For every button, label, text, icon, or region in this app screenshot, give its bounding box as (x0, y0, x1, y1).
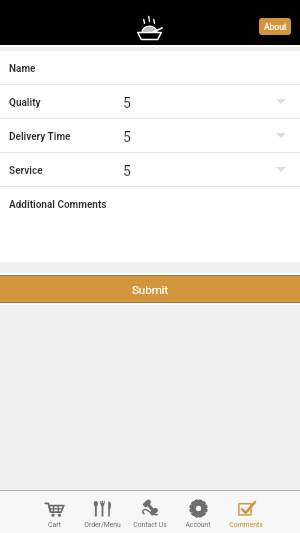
button[interactable]: About (259, 18, 291, 35)
button[interactable]: Submit (0, 275, 300, 303)
button[interactable]: Delivery Time (0, 119, 300, 153)
staticText: Contact Us (133, 521, 167, 529)
staticText: 5 (123, 163, 131, 179)
staticText: Submit (132, 283, 169, 296)
staticText: Account (185, 521, 211, 529)
staticText: Delivery Time (9, 131, 71, 143)
button[interactable]: Quality (0, 85, 300, 119)
button[interactable]: Cart (30, 491, 78, 533)
staticText: Comments (229, 521, 263, 529)
staticText: Additional Comments (9, 199, 107, 211)
staticText: 5 (123, 129, 131, 145)
button[interactable]: Comments (222, 491, 270, 533)
staticText: Service (9, 165, 43, 177)
staticText: Name (9, 63, 36, 75)
staticText: About (264, 22, 287, 32)
staticText: 5 (123, 95, 131, 111)
button[interactable]: Account (174, 491, 222, 533)
button[interactable]: Order/Menu (78, 491, 126, 533)
staticText: Quality (9, 97, 41, 109)
button[interactable]: Contact Us (126, 491, 174, 533)
button[interactable]: Additional Comments (0, 187, 300, 221)
staticText: Order/Menu (84, 521, 121, 529)
button[interactable]: Name (0, 51, 300, 85)
button[interactable]: Service (0, 153, 300, 187)
staticText: Cart (48, 521, 61, 529)
